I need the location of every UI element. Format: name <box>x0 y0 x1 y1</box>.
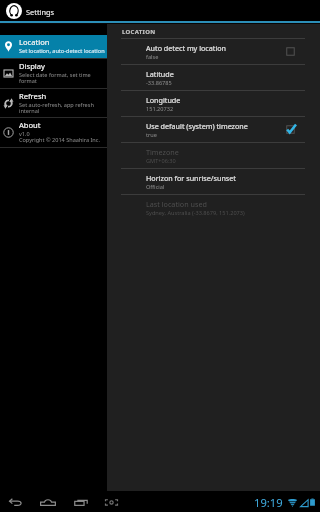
staticText: Official <box>146 183 165 191</box>
staticText: Set auto-refresh, app refresh internal <box>19 101 106 115</box>
button[interactable]: Auto detect my location <box>107 39 320 64</box>
staticText: Longitude <box>146 95 181 105</box>
button[interactable]: Longitude <box>107 91 320 116</box>
staticText: Use default (system) timezone <box>146 121 248 131</box>
staticText: About <box>19 120 41 130</box>
staticText: GMT+06:30 <box>146 157 176 165</box>
staticText: Location <box>19 37 50 47</box>
staticText: Last location used <box>146 199 207 209</box>
staticText: 151.20732 <box>146 105 174 113</box>
button[interactable]: Back <box>6 491 24 512</box>
button[interactable]: Refresh <box>0 89 107 117</box>
button[interactable]: Display <box>0 59 107 88</box>
button[interactable]: Home <box>39 491 57 512</box>
staticText: Set location, auto-detect location <box>19 47 105 55</box>
staticText: v1.0 Copyright © 2014 Shaahira Inc. <box>19 130 100 144</box>
staticText: -33.86785 <box>146 79 172 87</box>
staticText: Refresh <box>19 91 47 101</box>
staticText: Latitude <box>146 69 174 79</box>
staticText: Select date format, set time format <box>19 71 106 85</box>
staticText: true <box>146 131 157 139</box>
button[interactable]: Last location used <box>107 195 320 220</box>
button[interactable]: Unchecked <box>285 46 296 57</box>
staticText: 19:19 <box>254 495 283 510</box>
button[interactable]: Checked <box>285 124 296 135</box>
button[interactable]: Latitude <box>107 65 320 90</box>
staticText: Auto detect my location <box>146 43 227 53</box>
staticText: false <box>146 53 159 61</box>
button[interactable]: Location <box>0 35 107 58</box>
button[interactable]: Recent apps <box>72 491 90 512</box>
button[interactable]: About <box>0 118 107 147</box>
button[interactable]: Screenshot <box>102 491 120 512</box>
button[interactable]: Timezone <box>107 143 320 168</box>
staticText: Display <box>19 61 45 71</box>
button[interactable]: Use default (system) timezone <box>107 117 320 142</box>
staticText: Sydney, Australia (-33.8679, 151.2073) <box>146 209 245 217</box>
staticText: Settings <box>26 7 55 17</box>
staticText: LOCATION <box>122 28 156 36</box>
button[interactable]: Horizon for sunrise/sunset <box>107 169 320 194</box>
staticText: Horizon for sunrise/sunset <box>146 173 236 183</box>
staticText: Timezone <box>146 147 179 157</box>
